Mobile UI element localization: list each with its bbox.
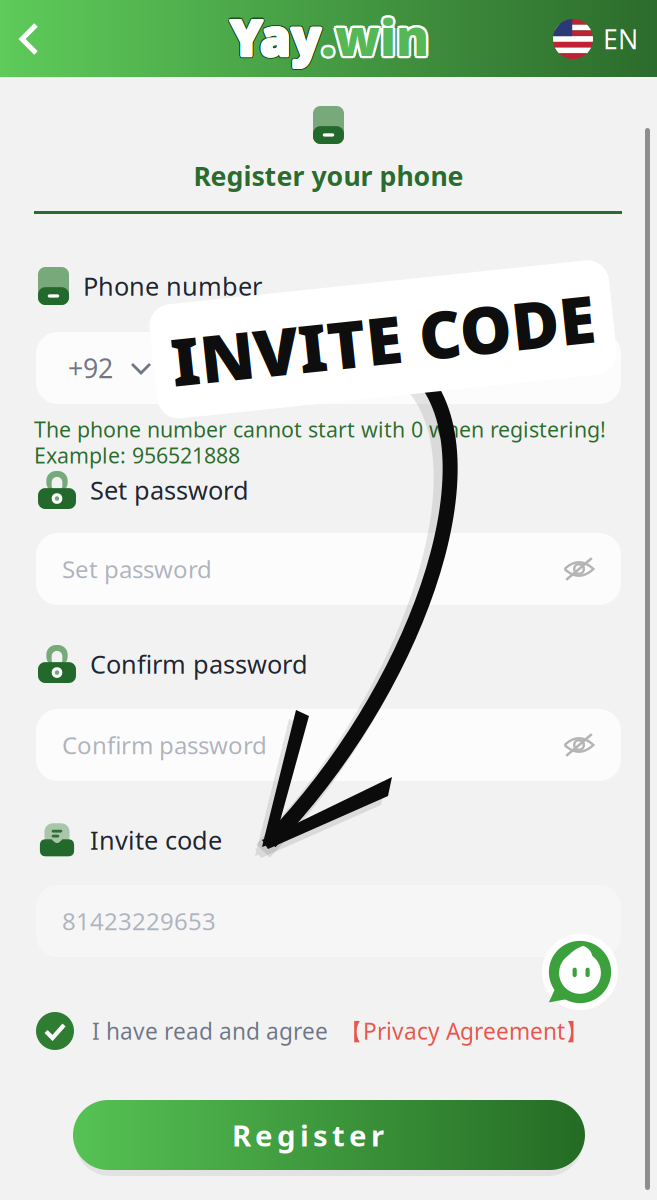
button[interactable]: Please enter your phone number — [214, 332, 621, 404]
staticText: .win — [323, 2, 431, 68]
staticText: Example: 956521888 — [34, 441, 240, 469]
staticText: Yay — [230, 2, 321, 67]
staticText: .win — [323, 4, 431, 69]
staticText: Yay — [231, 4, 322, 69]
staticText: .win — [319, 4, 427, 69]
staticText: Please enter your phone number — [238, 354, 571, 382]
staticText: I have read and agree — [92, 1016, 328, 1046]
staticText: INVITE CODE — [170, 296, 596, 383]
staticText: Yay — [229, 4, 320, 69]
staticText: .win — [322, 3, 430, 68]
staticText: 【Privacy Agreement】 — [340, 1016, 588, 1046]
staticText: .win — [321, 3, 429, 68]
staticText: .win — [319, 2, 427, 68]
staticText: Yay — [230, 6, 321, 72]
staticText: EN — [603, 21, 638, 57]
button[interactable]: 81423229653 — [36, 885, 621, 957]
button[interactable]: Set password — [36, 533, 621, 605]
staticText: .win — [321, 5, 429, 71]
staticText: Confirm password — [90, 647, 308, 681]
staticText: 81423229653 — [62, 905, 216, 937]
staticText: Register — [232, 1115, 384, 1154]
staticText: +92 — [68, 350, 113, 386]
staticText: Yay — [228, 2, 319, 68]
staticText: .win — [319, 6, 427, 71]
button[interactable]: Language: EN — [541, 6, 650, 72]
staticText: .win — [321, 4, 429, 69]
staticText: Invite code — [90, 823, 222, 857]
staticText: Yay — [232, 4, 323, 69]
staticText: Yay — [231, 3, 322, 68]
staticText: .win — [320, 4, 428, 69]
button[interactable]: +92 — [36, 332, 202, 404]
staticText: Register your phone — [193, 158, 463, 193]
staticText: Set password — [62, 553, 212, 585]
staticText: Yay — [228, 6, 319, 71]
button[interactable]: Confirm password — [36, 709, 621, 781]
staticText: Phone number — [83, 269, 262, 303]
staticText: .win — [322, 4, 430, 69]
staticText: The phone number cannot start with 0 whe… — [34, 415, 606, 443]
staticText: .win — [321, 2, 429, 67]
staticText: Yay — [230, 4, 321, 69]
staticText: Yay — [230, 3, 321, 68]
staticText: Yay — [230, 5, 321, 71]
button[interactable]: I have read and agree — [36, 1011, 621, 1051]
staticText: .win — [320, 5, 428, 70]
staticText: .win — [323, 6, 431, 71]
button[interactable]: Back — [6, 5, 68, 73]
staticText: Set password — [90, 473, 249, 507]
staticText: .win — [320, 3, 428, 68]
button[interactable]: Register — [73, 1100, 585, 1170]
staticText: Yay — [229, 5, 320, 70]
staticText: Confirm password — [62, 729, 267, 761]
staticText: Yay — [228, 4, 319, 69]
staticText: .win — [322, 5, 430, 70]
staticText: Yay — [231, 5, 322, 70]
staticText: Yay — [232, 2, 323, 68]
button[interactable]: Customer support chat — [542, 934, 618, 1010]
staticText: Yay — [229, 3, 320, 68]
staticText: .win — [321, 6, 429, 72]
staticText: Yay — [232, 6, 323, 71]
